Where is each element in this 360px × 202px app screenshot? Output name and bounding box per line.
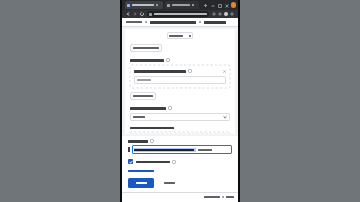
button[interactable]: Back xyxy=(125,11,131,17)
button[interactable]: Reload xyxy=(139,11,145,17)
button[interactable] xyxy=(132,145,232,154)
button[interactable]: Share xyxy=(211,11,217,17)
button[interactable] xyxy=(130,44,162,52)
button[interactable]: Extensions xyxy=(223,11,229,17)
button[interactable] xyxy=(130,92,156,100)
button[interactable] xyxy=(147,11,209,17)
button[interactable] xyxy=(125,1,163,9)
button[interactable] xyxy=(150,21,196,24)
button[interactable]: Minimize xyxy=(209,2,216,9)
button[interactable]: Menu xyxy=(229,11,235,17)
button[interactable] xyxy=(134,76,226,84)
button[interactable] xyxy=(158,178,180,188)
button[interactable] xyxy=(128,170,154,172)
button[interactable] xyxy=(130,113,230,121)
button[interactable] xyxy=(165,1,199,9)
button[interactable]: Help xyxy=(172,160,176,164)
button[interactable]: Forward xyxy=(132,11,138,17)
button[interactable]: Help xyxy=(166,58,170,62)
button[interactable] xyxy=(128,178,154,188)
button[interactable]: Profile xyxy=(231,2,236,8)
button[interactable]: Remove xyxy=(222,69,226,73)
button[interactable]: Help xyxy=(168,106,172,110)
button[interactable]: Help xyxy=(128,158,176,165)
button[interactable] xyxy=(204,21,226,24)
button[interactable]: New tab xyxy=(202,2,209,9)
button[interactable]: Close xyxy=(223,2,230,9)
button[interactable] xyxy=(126,21,142,23)
button[interactable]: Maximize xyxy=(216,2,223,9)
button[interactable] xyxy=(167,32,193,39)
button[interactable]: Help xyxy=(150,139,154,143)
button[interactable]: Help xyxy=(188,69,192,73)
button[interactable]: Bookmark xyxy=(217,11,223,17)
